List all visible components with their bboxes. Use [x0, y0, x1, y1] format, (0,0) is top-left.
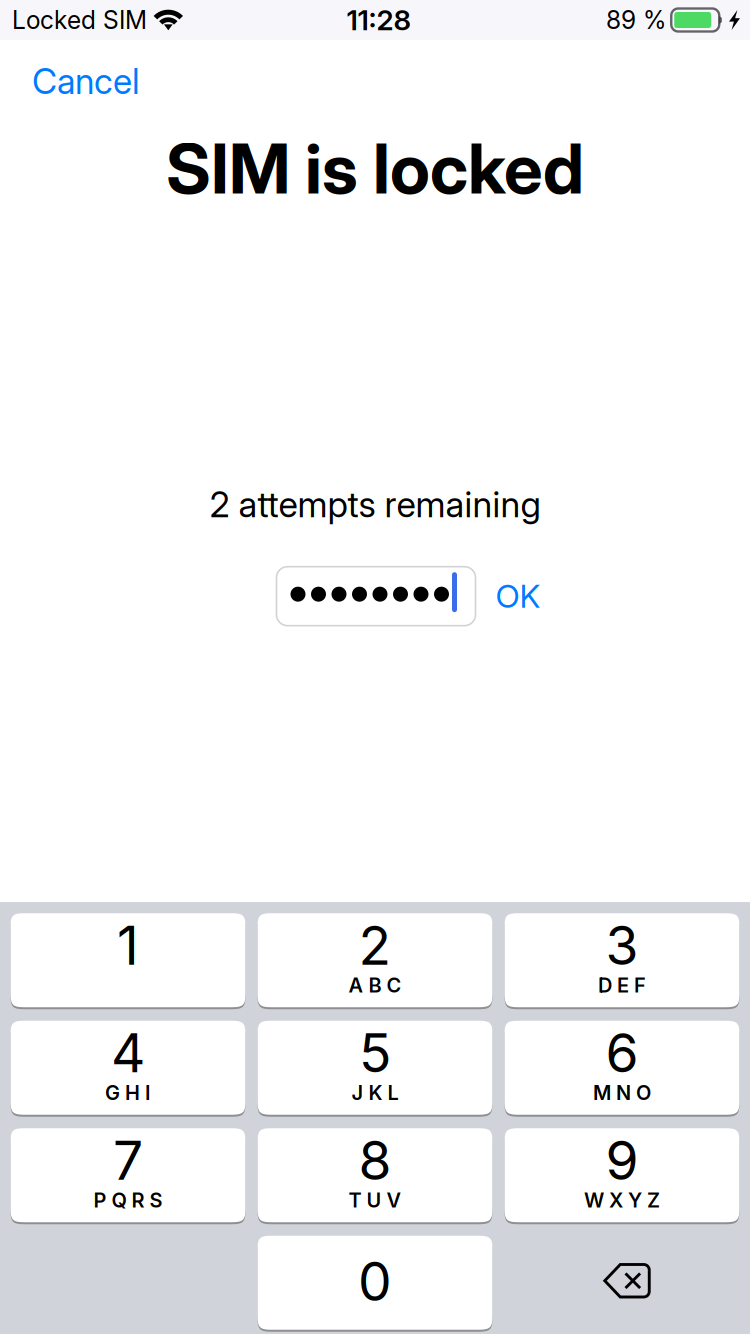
staticText: 6	[605, 1020, 638, 1085]
staticText: Cancel	[32, 60, 140, 102]
staticText: P Q R S	[93, 1188, 162, 1212]
staticText: 3	[605, 913, 638, 977]
staticText: SIM is locked	[166, 127, 584, 210]
staticText: G H I	[105, 1081, 151, 1105]
button[interactable]: 1	[10, 914, 245, 1008]
staticText: 2	[358, 913, 391, 977]
staticText: 1	[117, 913, 139, 977]
button[interactable]: 6	[504, 1022, 739, 1116]
button[interactable]: 2	[257, 914, 492, 1008]
staticText: Locked SIM	[12, 5, 147, 35]
staticText: OK	[495, 577, 540, 615]
button[interactable]: 8	[257, 1129, 492, 1223]
staticText: M N O	[593, 1081, 651, 1105]
button[interactable]: 5	[257, 1022, 492, 1116]
staticText: 2 attempts remaining	[209, 483, 540, 526]
staticText: 8	[358, 1128, 391, 1192]
button[interactable]: 4	[10, 1022, 245, 1116]
staticText: 5	[359, 1020, 391, 1085]
button[interactable]: 7	[10, 1129, 245, 1223]
staticText: 9	[605, 1128, 638, 1192]
staticText: 4	[111, 1020, 145, 1085]
staticText: 7	[113, 1128, 143, 1192]
staticText: 11:28	[346, 3, 411, 37]
button[interactable]: OK	[495, 577, 540, 615]
staticText: D E F	[598, 973, 646, 997]
staticText: 89 %	[606, 5, 666, 35]
button[interactable]: SIM PIN	[276, 567, 475, 626]
staticText: A B C	[348, 973, 401, 997]
button[interactable]: Cancel	[0, 30, 160, 112]
button[interactable]: Delete	[504, 1237, 739, 1331]
button[interactable]: 9	[504, 1129, 739, 1223]
staticText: 0	[358, 1249, 392, 1313]
button[interactable]: 0	[257, 1237, 492, 1331]
staticText: W X Y Z	[584, 1188, 660, 1212]
button[interactable]: 3	[504, 914, 739, 1008]
staticText: J K L	[351, 1081, 398, 1105]
staticText: T U V	[348, 1188, 401, 1212]
